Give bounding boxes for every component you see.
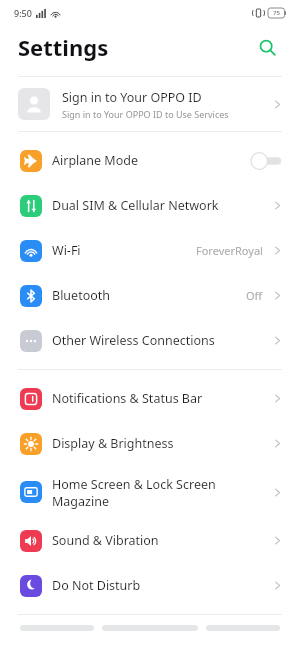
button[interactable]: Home Screen & Lock Screen Magazine <box>0 466 300 518</box>
staticText: Sound & Vibration <box>52 532 159 549</box>
staticText: Sign in to Your OPPO ID to Use Services <box>62 108 229 120</box>
button[interactable]: Airplane Mode toggle <box>250 152 284 170</box>
staticText: Dual SIM & Cellular Network <box>52 197 219 214</box>
button[interactable]: Sign in to Your OPPO ID <box>0 77 300 131</box>
staticText: Do Not Disturb <box>52 577 141 594</box>
button[interactable]: Do Not Disturb <box>0 563 300 608</box>
staticText: Wi-Fi <box>52 242 81 259</box>
staticText: Other Wireless Connections <box>52 332 215 349</box>
staticText: 9:50 <box>14 7 32 19</box>
staticText: Home Screen & Lock Screen Magazine <box>52 476 271 509</box>
staticText: Airplane Mode <box>52 152 138 169</box>
staticText: Notifications & Status Bar <box>52 390 203 407</box>
staticText: 75 <box>273 9 280 17</box>
button[interactable]: Bluetooth <box>0 273 300 318</box>
button[interactable]: Dual SIM & Cellular Network <box>0 183 300 228</box>
button[interactable]: Display & Brightness <box>0 421 300 466</box>
staticText: Bluetooth <box>52 287 111 304</box>
button[interactable]: Search <box>250 30 284 64</box>
button[interactable]: Sound & Vibration <box>0 518 300 563</box>
button[interactable]: Airplane Mode <box>0 138 300 183</box>
staticText: Display & Brightness <box>52 435 174 452</box>
staticText: Settings <box>18 32 109 62</box>
button[interactable]: Notifications & Status Bar <box>0 376 300 421</box>
staticText: Off <box>246 288 263 303</box>
staticText: Sign in to Your OPPO ID <box>62 89 202 106</box>
button[interactable]: Other Wireless Connections <box>0 318 300 363</box>
staticText: ForeverRoyal <box>196 243 263 258</box>
button[interactable]: Wi-Fi <box>0 228 300 273</box>
